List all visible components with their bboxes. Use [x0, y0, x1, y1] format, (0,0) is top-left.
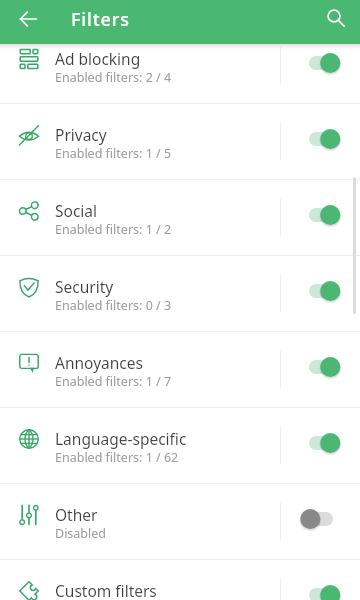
staticText: Enabled filters: 1 / 5 — [55, 145, 172, 162]
staticText: Enabled filters: 1 / 62 — [55, 449, 179, 466]
staticText: Enabled filters: 0 / 3 — [55, 297, 172, 314]
button[interactable]: Toggle — [300, 427, 342, 459]
staticText: Disabled — [55, 525, 107, 542]
button[interactable]: Toggle — [300, 503, 342, 535]
button[interactable]: Toggle — [300, 123, 342, 155]
button[interactable]: Toggle — [300, 275, 342, 307]
staticText: Custom filters — [55, 580, 157, 600]
button[interactable]: Language-specific — [0, 408, 360, 484]
staticText: Annoyances — [55, 352, 143, 373]
staticText: Security — [55, 276, 114, 297]
button[interactable]: Privacy — [0, 104, 360, 180]
staticText: Language-specific — [55, 428, 187, 449]
button[interactable]: Social — [0, 180, 360, 256]
button[interactable]: Ad blocking — [0, 28, 360, 104]
button[interactable]: Toggle — [300, 579, 342, 600]
staticText: Enabled filters: 1 / 7 — [55, 373, 172, 390]
staticText: Enabled filters: 2 / 4 — [55, 69, 172, 86]
button[interactable]: Toggle — [300, 351, 342, 383]
staticText: Filters — [71, 7, 130, 32]
staticText: Enabled filters: 1 / 2 — [55, 221, 172, 238]
button[interactable]: Annoyances — [0, 332, 360, 408]
button[interactable]: Toggle — [300, 47, 342, 79]
button[interactable]: Security — [0, 256, 360, 332]
staticText: Ad blocking — [55, 48, 141, 69]
button[interactable]: Back — [12, 3, 44, 35]
button[interactable]: Other — [0, 484, 360, 560]
staticText: Other — [55, 504, 98, 525]
button[interactable]: Search — [320, 2, 352, 34]
button[interactable]: Custom filters — [0, 560, 360, 600]
staticText: Privacy — [55, 124, 107, 145]
button[interactable]: Toggle — [300, 199, 342, 231]
staticText: Social — [55, 200, 98, 221]
